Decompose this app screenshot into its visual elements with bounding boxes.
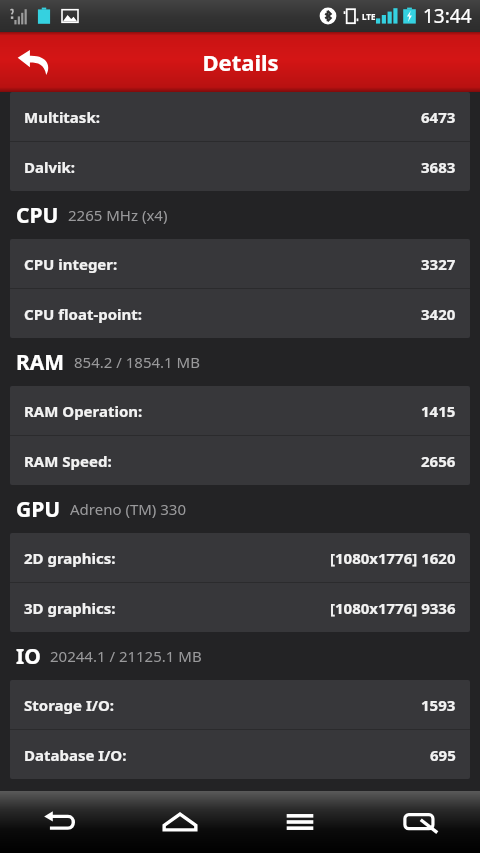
staticText: 2656 [421, 451, 456, 471]
button[interactable]: Multitask: [10, 92, 470, 141]
staticText: Dalvik: [24, 157, 76, 177]
staticText: CPU float-point: [24, 304, 143, 324]
staticText: Multitask: [24, 107, 100, 127]
button[interactable]: 3D graphics: [10, 583, 470, 632]
staticText: GPU [16, 495, 61, 524]
button[interactable]: 2D graphics: [10, 533, 470, 582]
staticText: 3327 [421, 254, 456, 274]
staticText: CPU [16, 201, 59, 230]
staticText: 854.2 / 1854.1 MB [74, 352, 200, 372]
staticText: RAM Operation: [24, 401, 143, 421]
staticText: LTE [362, 11, 376, 22]
staticText: [1080x1776] 9336 [330, 598, 456, 618]
button[interactable]: Home [120, 791, 240, 853]
staticText: [1080x1776] 1620 [330, 548, 456, 568]
button[interactable]: Back [8, 36, 60, 88]
staticText: 695 [430, 745, 456, 765]
staticText: RAM Speed: [24, 451, 112, 471]
staticText: Adreno (TM) 330 [70, 499, 186, 519]
button[interactable]: Database I/O: [10, 730, 470, 779]
button[interactable]: QSlide [360, 791, 480, 853]
button[interactable]: Menu [240, 791, 360, 853]
staticText: 2D graphics: [24, 548, 116, 568]
button[interactable]: CPU float-point: [10, 289, 470, 338]
button[interactable]: CPU integer: [10, 239, 470, 288]
button[interactable]: Back [0, 791, 120, 853]
staticText: 3420 [421, 304, 456, 324]
button[interactable]: RAM Operation: [10, 386, 470, 435]
staticText: 3683 [421, 157, 456, 177]
staticText: IO [16, 642, 41, 671]
staticText: 20244.1 / 21125.1 MB [50, 646, 202, 666]
staticText: Database I/O: [24, 745, 127, 765]
button[interactable]: Dalvik: [10, 142, 470, 191]
staticText: 13:44 [423, 3, 472, 29]
button[interactable]: Storage I/O: [10, 680, 470, 729]
staticText: CPU integer: [24, 254, 118, 274]
staticText: 1415 [421, 401, 456, 421]
staticText: 2265 MHz (x4) [68, 205, 168, 225]
button[interactable]: RAM Speed: [10, 436, 470, 485]
staticText: 3D graphics: [24, 598, 116, 618]
staticText: Details [202, 47, 279, 77]
staticText: 6473 [421, 107, 456, 127]
staticText: Storage I/O: [24, 695, 115, 715]
staticText: RAM [16, 348, 65, 377]
staticText: 1593 [421, 695, 456, 715]
